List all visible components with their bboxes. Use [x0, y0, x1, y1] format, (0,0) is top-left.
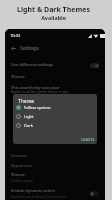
button[interactable]: Follow system [13, 103, 97, 112]
staticText: Theme [11, 172, 25, 178]
button[interactable]: This award only uses your [5, 85, 105, 94]
staticText: Available on Android 12 and above [11, 194, 67, 199]
button[interactable]: CANCEL [77, 135, 97, 144]
staticText: Available [41, 14, 66, 21]
staticText: Gestures [11, 153, 27, 158]
button[interactable]: Light [13, 112, 97, 121]
staticText: CANCEL [81, 137, 95, 142]
staticText: Follow system [24, 105, 51, 110]
staticText: Theme [18, 98, 35, 105]
button[interactable]: Theme [5, 74, 105, 80]
staticText: Settings [20, 45, 40, 52]
staticText: 10:32 [10, 33, 21, 38]
staticText: Light & Dark Themes [17, 5, 90, 15]
staticText: Applies to all the system theme in app [11, 90, 68, 94]
staticText: This award only uses your [11, 85, 60, 90]
button[interactable]: Use different settings [5, 60, 105, 70]
staticText: Theme [11, 74, 25, 80]
button[interactable]: Dark [13, 121, 97, 130]
staticText: Appearance [11, 163, 33, 168]
button[interactable]: Back [9, 44, 18, 53]
staticText: Enable dynamic colors [11, 188, 56, 194]
button[interactable]: Theme [11, 172, 99, 183]
staticText: Light [24, 114, 34, 119]
staticText: Follow system [11, 178, 34, 183]
staticText: Use different settings [11, 62, 54, 68]
staticText: Dark [24, 123, 33, 128]
button[interactable]: Enable dynamic colors [11, 188, 99, 199]
